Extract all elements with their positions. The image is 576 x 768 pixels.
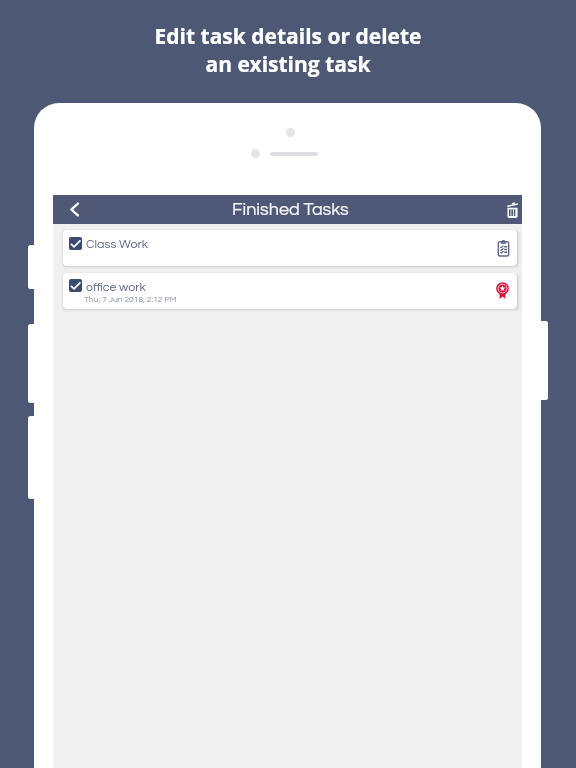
staticText: Thu, 7 Jun 2018, 2:12 PM [84, 295, 177, 304]
button[interactable]: Delete all [492, 195, 522, 224]
staticText: Edit task details or delete an existing … [0, 22, 576, 78]
staticText: Finished Tasks [232, 200, 349, 219]
button[interactable]: office work [63, 273, 517, 309]
button[interactable]: Back [53, 195, 95, 224]
staticText: office work [86, 281, 146, 294]
button[interactable]: Class Work [63, 230, 517, 266]
staticText: Class Work [86, 238, 148, 251]
